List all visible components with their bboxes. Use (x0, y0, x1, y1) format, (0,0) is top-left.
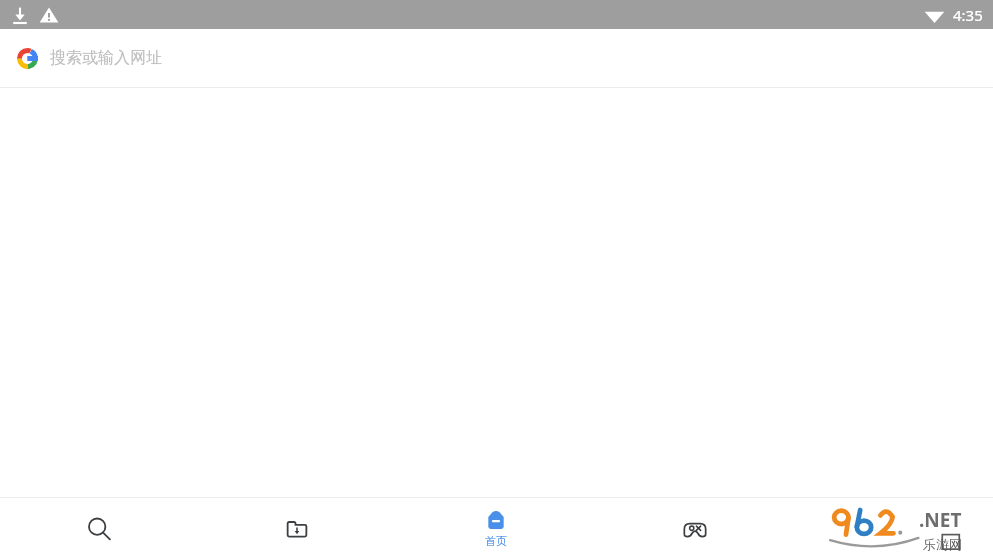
button[interactable]: Downloads (198, 498, 396, 559)
staticText: 首页 (485, 534, 507, 548)
button[interactable]: Games (595, 498, 794, 559)
staticText: .NET (919, 507, 962, 533)
button[interactable]: Home (396, 498, 595, 559)
staticText: 4:35 (953, 5, 983, 25)
staticText: 乐游网 (923, 536, 962, 552)
button[interactable]: Search (0, 498, 198, 559)
staticText: 搜索或输入网址 (50, 48, 162, 68)
button[interactable]: 搜索或输入网址 (0, 29, 993, 87)
